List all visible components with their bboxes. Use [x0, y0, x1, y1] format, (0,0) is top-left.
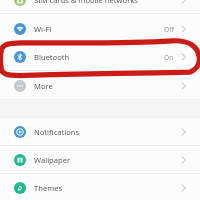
staticText: On	[164, 53, 174, 62]
button[interactable]: Bluetooth	[0, 43, 200, 71]
button[interactable]: Themes	[0, 174, 200, 200]
button[interactable]: More	[0, 72, 200, 100]
button[interactable]: Wi-Fi	[0, 15, 200, 43]
button[interactable]: Notifications	[0, 118, 200, 146]
staticText: Wi-Fi	[34, 24, 164, 34]
button[interactable]: Wallpaper	[0, 146, 200, 174]
staticText: More	[34, 81, 179, 91]
staticText: Off	[164, 25, 174, 34]
staticText: SIM cards & mobile networks	[34, 0, 179, 5]
staticText: Notifications	[34, 127, 179, 137]
staticText: Bluetooth	[34, 52, 164, 62]
staticText: Wallpaper	[34, 155, 179, 165]
staticText: Themes	[34, 183, 179, 193]
button[interactable]: SIM cards & mobile networks	[0, 0, 200, 14]
